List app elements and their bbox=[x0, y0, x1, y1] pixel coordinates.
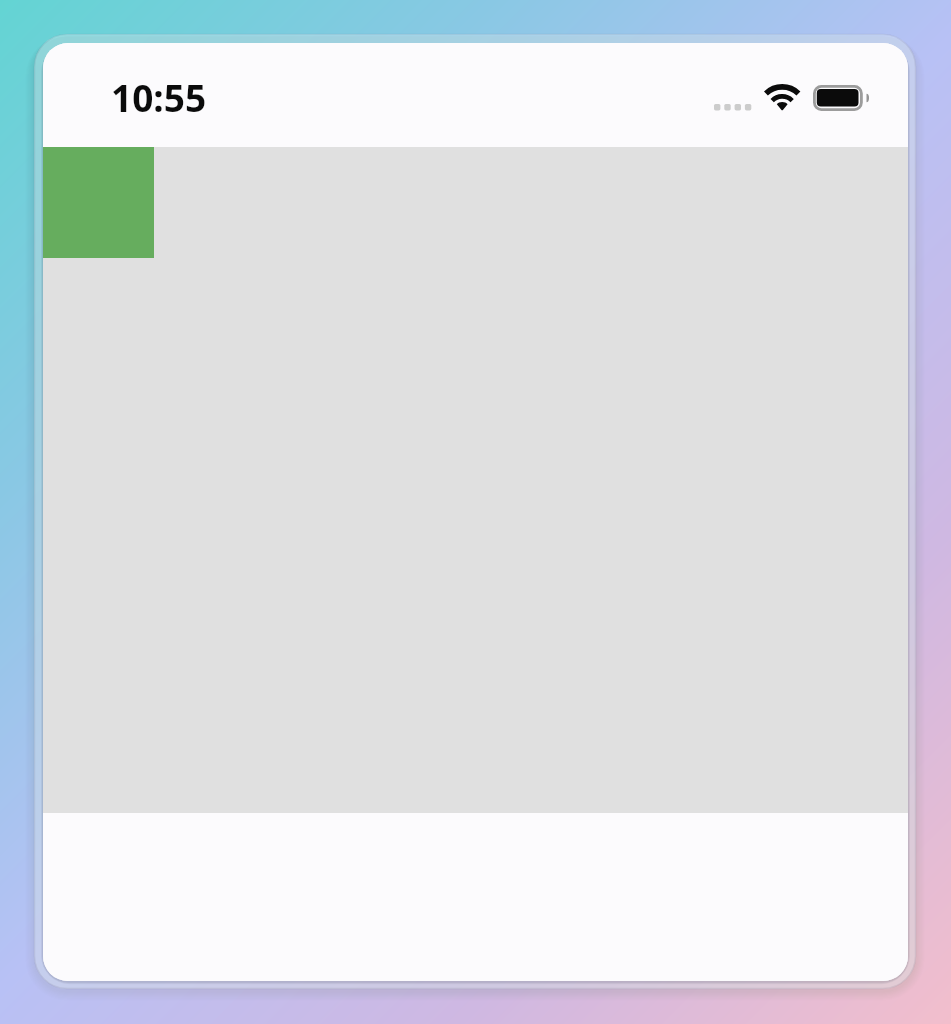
other: Wi-Fi bbox=[764, 82, 801, 111]
other: Battery bbox=[813, 85, 868, 112]
other: Mobile signal bbox=[714, 104, 751, 111]
staticText: 10:55 bbox=[111, 72, 207, 122]
